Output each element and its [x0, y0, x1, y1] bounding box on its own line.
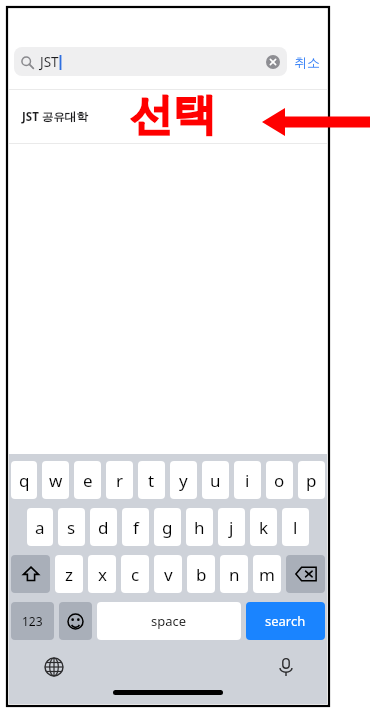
- staticText: w: [49, 469, 63, 492]
- staticText: t: [148, 469, 155, 492]
- button[interactable]: f: [122, 508, 149, 546]
- button[interactable]: i: [234, 461, 261, 499]
- button[interactable]: x: [88, 555, 116, 593]
- button[interactable]: q: [11, 461, 37, 499]
- button[interactable]: h: [186, 508, 213, 546]
- button[interactable]: a: [27, 508, 53, 546]
- button[interactable]: n: [220, 555, 248, 593]
- button[interactable]: p: [298, 461, 325, 499]
- staticText: s: [67, 516, 76, 539]
- staticText: l: [293, 516, 298, 539]
- button[interactable]: c: [121, 555, 149, 593]
- button[interactable]: Backspace: [286, 555, 325, 593]
- staticText: q: [19, 469, 30, 492]
- button[interactable]: Shift: [11, 555, 50, 593]
- staticText: n: [229, 563, 240, 586]
- staticText: i: [245, 469, 250, 492]
- button[interactable]: search: [246, 602, 325, 640]
- button[interactable]: e: [74, 461, 101, 499]
- button[interactable]: 취소: [287, 48, 327, 76]
- staticText: p: [306, 469, 317, 492]
- staticText: v: [164, 563, 173, 586]
- button[interactable]: JST 공유대학: [9, 90, 327, 143]
- button[interactable]: d: [90, 508, 117, 546]
- button[interactable]: Emoji: [59, 602, 92, 640]
- staticText: x: [98, 563, 107, 586]
- staticText: 123: [22, 613, 43, 629]
- staticText: search: [265, 612, 306, 630]
- button[interactable]: l: [282, 508, 309, 546]
- staticText: h: [194, 516, 205, 539]
- button[interactable]: JST: [14, 47, 287, 76]
- button[interactable]: o: [266, 461, 293, 499]
- staticText: 취소: [294, 54, 320, 70]
- staticText: 선택: [130, 88, 216, 142]
- button[interactable]: v: [154, 555, 182, 593]
- button[interactable]: g: [154, 508, 181, 546]
- staticText: u: [210, 469, 221, 492]
- staticText: m: [259, 563, 275, 586]
- staticText: a: [35, 516, 45, 539]
- staticText: JST: [40, 53, 59, 71]
- button[interactable]: m: [253, 555, 281, 593]
- button[interactable]: s: [58, 508, 85, 546]
- button[interactable]: y: [170, 461, 197, 499]
- button[interactable]: 123: [11, 602, 54, 640]
- button[interactable]: space: [97, 602, 241, 640]
- staticText: b: [196, 563, 207, 586]
- staticText: f: [133, 516, 139, 539]
- staticText: j: [229, 516, 234, 539]
- staticText: c: [131, 563, 140, 586]
- staticText: space: [151, 612, 187, 630]
- staticText: e: [83, 469, 93, 492]
- staticText: k: [259, 516, 269, 539]
- button[interactable]: t: [138, 461, 165, 499]
- button[interactable]: u: [202, 461, 229, 499]
- staticText: r: [116, 469, 124, 492]
- button[interactable]: k: [250, 508, 277, 546]
- button[interactable]: Change keyboard language: [41, 654, 67, 680]
- staticText: d: [98, 516, 109, 539]
- staticText: y: [179, 469, 188, 492]
- staticText: z: [65, 563, 73, 586]
- button[interactable]: j: [218, 508, 245, 546]
- button[interactable]: Voice input: [273, 654, 299, 680]
- button[interactable]: z: [55, 555, 83, 593]
- button[interactable]: Clear text: [263, 52, 283, 72]
- button[interactable]: b: [187, 555, 215, 593]
- staticText: JST 공유대학: [22, 109, 88, 125]
- staticText: o: [274, 469, 285, 492]
- button[interactable]: r: [106, 461, 133, 499]
- button[interactable]: w: [42, 461, 69, 499]
- staticText: g: [162, 516, 173, 539]
